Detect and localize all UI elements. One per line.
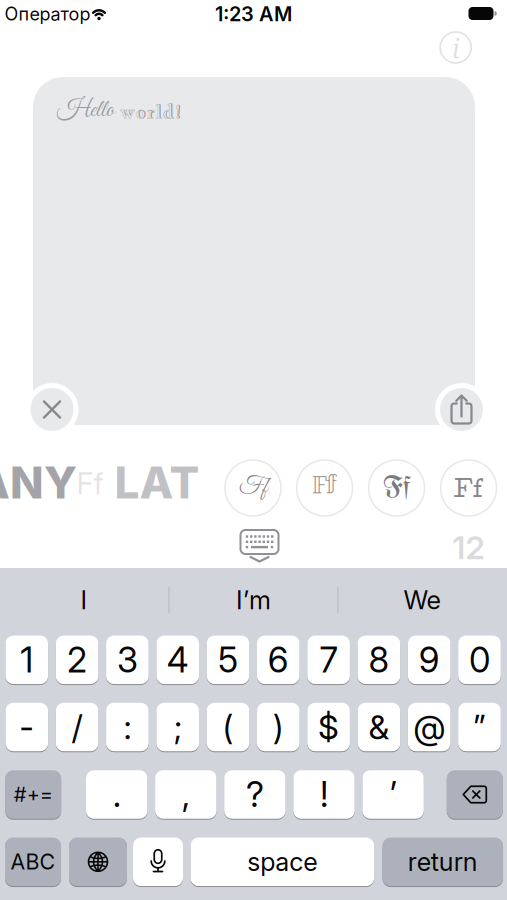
button[interactable]: I’m — [173, 578, 333, 622]
staticText: return — [408, 846, 478, 877]
button[interactable]: ANY — [0, 456, 77, 509]
button[interactable]: 0 — [458, 635, 501, 684]
staticText: 2 — [67, 639, 87, 681]
button[interactable]: 2 — [56, 635, 98, 684]
staticText: i — [452, 30, 460, 67]
staticText: ABC — [10, 849, 55, 875]
staticText: 0 — [469, 639, 490, 681]
button[interactable]: 3 — [106, 635, 149, 684]
button[interactable]: Blackletter font — [368, 460, 424, 516]
button[interactable]: Outline font — [296, 460, 352, 516]
staticText: $ — [318, 707, 339, 747]
staticText: ! — [320, 773, 328, 815]
staticText: 12 — [452, 528, 484, 567]
button[interactable]: space — [191, 837, 374, 886]
staticText: & — [368, 707, 389, 747]
button[interactable]: 1 — [5, 635, 48, 684]
staticText: 3 — [117, 639, 138, 681]
button[interactable]: 6 — [257, 635, 300, 684]
button[interactable]: ’ — [362, 770, 424, 819]
staticText: - — [19, 707, 34, 747]
staticText: ( — [222, 707, 233, 747]
button[interactable]: We — [342, 578, 502, 622]
staticText: We — [403, 585, 440, 615]
button[interactable]: 8 — [358, 635, 400, 684]
button[interactable]: , — [155, 770, 216, 819]
button[interactable]: Serif font — [440, 460, 496, 516]
button[interactable]: Delete — [447, 770, 503, 819]
staticText: , — [182, 773, 190, 815]
staticText: ’ — [390, 773, 397, 815]
button[interactable]: LAT — [114, 456, 199, 509]
button[interactable]: Clear text — [25, 383, 78, 436]
button[interactable]: Share — [435, 383, 488, 436]
staticText: @ — [413, 707, 445, 747]
button[interactable]: I — [4, 578, 164, 622]
button[interactable]: - — [5, 703, 48, 751]
staticText: Ff — [312, 469, 336, 507]
staticText: / — [72, 707, 83, 747]
staticText: 1:23 AM — [215, 2, 292, 26]
staticText: 8 — [368, 639, 389, 681]
button[interactable]: Info — [440, 32, 471, 63]
button[interactable]: ” — [458, 703, 501, 751]
staticText: ) — [273, 707, 284, 747]
button[interactable]: : — [106, 703, 149, 751]
button[interactable]: Dictation — [133, 837, 183, 886]
button[interactable]: Next keyboard — [69, 837, 127, 886]
staticText: Ff — [453, 474, 483, 502]
button[interactable]: return — [383, 837, 503, 886]
staticText: . — [113, 773, 121, 815]
staticText: 6 — [268, 639, 289, 681]
staticText: world! — [120, 100, 182, 124]
staticText: : — [123, 707, 131, 747]
button[interactable]: $ — [307, 703, 350, 751]
staticText: Hello — [57, 95, 114, 125]
button[interactable]: ( — [207, 703, 249, 751]
button[interactable]: ABC — [5, 837, 61, 886]
staticText: ANY — [0, 456, 77, 509]
button[interactable]: ! — [293, 770, 355, 819]
button[interactable]: @ — [408, 703, 450, 751]
staticText: Оператор — [4, 3, 90, 25]
staticText: Ff — [383, 474, 410, 502]
button[interactable]: & — [358, 703, 400, 751]
staticText: Ff — [76, 466, 103, 501]
staticText: ? — [246, 773, 264, 815]
button[interactable]: ? — [224, 770, 286, 819]
button[interactable]: Dismiss keyboard — [239, 529, 279, 562]
button[interactable]: Script font — [225, 460, 281, 516]
staticText: I — [80, 585, 87, 615]
button[interactable]: . — [86, 770, 147, 819]
button[interactable]: / — [56, 703, 98, 751]
staticText: #+= — [14, 782, 53, 807]
staticText: 4 — [167, 639, 189, 681]
staticText: 1 — [20, 639, 33, 681]
staticText: I’m — [236, 585, 271, 615]
button[interactable]: 9 — [408, 635, 450, 684]
staticText: Ff — [239, 473, 267, 501]
button[interactable]: ; — [156, 703, 199, 751]
button[interactable]: 5 — [207, 635, 249, 684]
button[interactable]: 4 — [156, 635, 199, 684]
staticText: LAT — [114, 456, 199, 509]
button[interactable]: 7 — [307, 635, 350, 684]
staticText: space — [247, 846, 317, 877]
staticText: 9 — [419, 639, 440, 681]
staticText: ” — [473, 707, 486, 747]
staticText: 7 — [320, 639, 338, 681]
button[interactable]: #+= — [5, 770, 61, 819]
staticText: 5 — [218, 639, 238, 681]
staticText: ; — [174, 707, 182, 747]
button[interactable]: ) — [257, 703, 300, 751]
